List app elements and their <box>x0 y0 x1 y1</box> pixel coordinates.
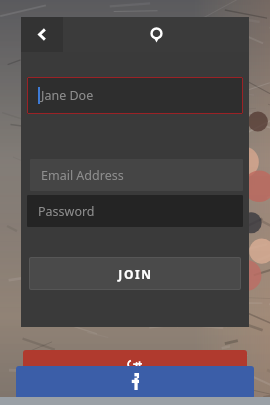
button[interactable]: Back <box>21 17 63 52</box>
staticText: JOIN <box>118 266 153 282</box>
staticText: Jane Doe <box>41 87 94 104</box>
button[interactable]: Email Address <box>30 159 243 191</box>
button[interactable]: Sign up with Google Plus <box>23 350 247 388</box>
staticText: Password <box>38 203 95 220</box>
button[interactable]: Location <box>139 18 173 52</box>
button[interactable]: Password <box>27 195 243 227</box>
button[interactable]: Jane Doe <box>27 77 243 114</box>
button[interactable]: Sign up with Facebook <box>16 366 254 399</box>
staticText: Email Address <box>41 167 124 184</box>
button[interactable]: JOIN <box>29 257 241 290</box>
